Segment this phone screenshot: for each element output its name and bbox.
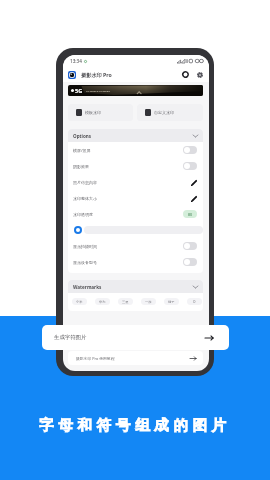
staticText: 字母和符号组成的图片 bbox=[39, 416, 231, 434]
staticText: 阴影效果 bbox=[73, 164, 89, 169]
staticText: AI TRIPLE CAMERA bbox=[86, 89, 111, 92]
staticText: 生成字符图片 bbox=[54, 334, 87, 341]
button[interactable]: 水印整体大小 bbox=[68, 190, 203, 206]
staticText: O bbox=[193, 300, 196, 304]
staticText: 摄影水印 Pro bbox=[81, 71, 112, 78]
staticText: Watermarks bbox=[73, 284, 102, 290]
staticText: 锤子 bbox=[168, 300, 175, 304]
button[interactable]: Refresh bbox=[181, 70, 190, 79]
button[interactable]: 显示拍摄时间 bbox=[68, 238, 203, 254]
staticText: Options bbox=[73, 133, 92, 139]
staticText: 80 bbox=[188, 212, 193, 217]
button[interactable]: Settings bbox=[195, 70, 204, 79]
staticText: 显示拍摄时间 bbox=[73, 244, 97, 249]
staticText: 水印整体大小 bbox=[73, 196, 97, 201]
button[interactable]: 模板水印 bbox=[68, 104, 133, 121]
staticText: 华为 bbox=[99, 300, 106, 304]
staticText: 13:34 bbox=[70, 58, 82, 64]
button[interactable]: 照片信息内容 bbox=[68, 174, 203, 190]
staticText: 照片信息内容 bbox=[73, 180, 97, 185]
staticText: 5G bbox=[75, 87, 83, 94]
button[interactable]: 摄影水印 Pro 使用教程 bbox=[68, 351, 203, 365]
button[interactable]: 显示设备型号 bbox=[68, 254, 203, 270]
staticText: 自定义水印 bbox=[154, 110, 174, 115]
staticText: 小米 bbox=[76, 300, 83, 304]
staticText: 三星 bbox=[122, 300, 129, 304]
staticText: 摄影水印 Pro 使用教程 bbox=[76, 356, 115, 361]
button[interactable]: 生成字符图片 bbox=[42, 325, 229, 350]
button[interactable]: 5G bbox=[68, 85, 203, 96]
staticText: 水印透明度 bbox=[73, 212, 93, 217]
staticText: 显示设备型号 bbox=[73, 260, 97, 265]
button[interactable]: 阴影效果 bbox=[68, 158, 203, 174]
button[interactable]: 水印透明度 bbox=[68, 206, 203, 222]
staticText: 一加 bbox=[145, 300, 152, 304]
button[interactable]: 横屏/竖屏 bbox=[68, 142, 203, 158]
staticText: 横屏/竖屏 bbox=[73, 148, 91, 153]
staticText: 模板水印 bbox=[85, 110, 101, 115]
button[interactable]: 自定义水印 bbox=[137, 104, 203, 121]
